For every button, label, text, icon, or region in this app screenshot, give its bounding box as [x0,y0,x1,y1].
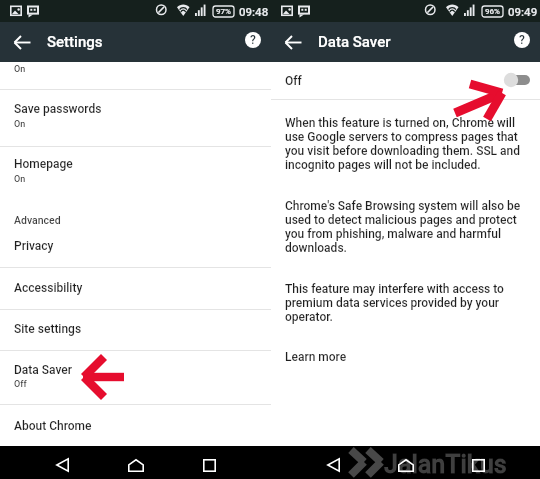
staticText: When this feature is turned on, Chrome w… [285,116,530,172]
button[interactable]: Homepage [0,147,271,207]
button[interactable]: Recent apps [194,450,224,479]
staticText: Off [285,74,302,88]
staticText: This feature may interfere with access t… [285,282,530,324]
staticText: 97% [216,7,231,16]
staticText: Chrome's Safe Browsing system will also … [285,199,530,255]
staticText: Save passwords [14,102,102,116]
staticText: 96% [485,7,500,16]
button[interactable]: Privacy [0,234,271,267]
staticText: Accessibility [14,281,83,295]
button[interactable]: Navigate up [6,26,38,58]
button[interactable]: Home [121,450,151,479]
staticText: Advanced [14,214,61,226]
button[interactable]: Off [271,62,540,99]
button[interactable]: Recent apps [463,450,493,479]
staticText: ? [250,33,256,47]
staticText: 09:48 [239,5,269,18]
staticText: Privacy [14,239,54,253]
button[interactable]: Help and feedback [237,24,269,56]
staticText: On [14,174,26,185]
staticText: Homepage [14,157,73,171]
button[interactable]: Navigate up [277,26,309,58]
button[interactable]: Help and feedback [506,24,538,56]
staticText: ? [519,33,525,47]
staticText: Settings [47,33,103,51]
staticText: Off [14,379,27,390]
staticText: On [14,119,26,130]
staticText: 09:49 [508,5,538,18]
button[interactable]: On [0,62,271,88]
button[interactable]: About Chrome [0,405,271,445]
button[interactable]: Site settings [0,310,271,350]
button[interactable]: Data Saver toggle [502,68,540,92]
button[interactable]: Learn more [285,350,347,364]
staticText: On [14,64,26,75]
staticText: JalanTikus [384,450,507,479]
button[interactable]: Accessibility [0,268,271,309]
button[interactable]: Back [47,450,77,479]
staticText: Data Saver [14,363,73,377]
button[interactable]: Home [391,450,421,479]
staticText: Data Saver [318,33,391,51]
staticText: About Chrome [14,419,92,433]
button[interactable]: Back [318,450,348,479]
staticText: Site settings [14,322,82,336]
button[interactable]: Data Saver [0,351,271,404]
staticText: Learn more [285,350,347,364]
button[interactable]: Save passwords [0,90,271,146]
